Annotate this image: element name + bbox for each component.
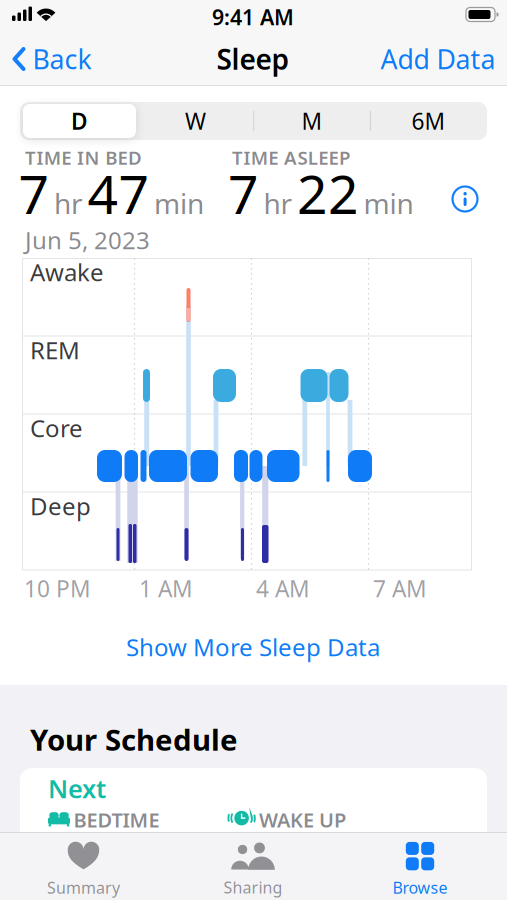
staticText: Sleep bbox=[216, 40, 289, 78]
staticText: 7 bbox=[228, 158, 259, 229]
staticText: Jun 5, 2023 bbox=[25, 224, 150, 256]
staticText: TIME IN BED bbox=[25, 145, 142, 170]
staticText: Core bbox=[30, 412, 83, 444]
staticText: Next bbox=[48, 771, 106, 805]
staticText: 6M bbox=[411, 106, 445, 136]
staticText: BEDTIME bbox=[73, 806, 159, 833]
staticText: min bbox=[363, 185, 413, 222]
button[interactable]: Add Data bbox=[380, 41, 495, 77]
staticText: Add Data bbox=[380, 41, 495, 77]
staticText: Awake bbox=[30, 256, 104, 288]
button[interactable]: Summary bbox=[47, 842, 120, 898]
staticText: 4 AM bbox=[256, 573, 310, 604]
button[interactable]: D bbox=[23, 104, 136, 138]
staticText: Your Schedule bbox=[30, 720, 238, 759]
staticText: hr bbox=[54, 185, 83, 222]
staticText: Summary bbox=[47, 877, 120, 898]
button[interactable]: About Sleep bbox=[451, 185, 479, 213]
staticText: 7 bbox=[18, 158, 49, 229]
button[interactable]: Back bbox=[12, 41, 91, 77]
button[interactable]: Browse bbox=[392, 842, 447, 898]
staticText: TIME ASLEEP bbox=[232, 145, 350, 170]
staticText: 47 bbox=[87, 158, 149, 229]
staticText: 7 AM bbox=[373, 573, 427, 604]
staticText: Deep bbox=[30, 490, 91, 522]
button[interactable]: 6M bbox=[372, 104, 485, 138]
staticText: 9:41 AM bbox=[212, 3, 294, 31]
staticText: WAKE UP bbox=[259, 806, 346, 833]
staticText: Back bbox=[32, 41, 91, 77]
staticText: M bbox=[301, 106, 322, 136]
button[interactable]: W bbox=[139, 104, 252, 138]
staticText: Sharing bbox=[223, 877, 282, 898]
staticText: hr bbox=[263, 185, 292, 222]
staticText: Show More Sleep Data bbox=[126, 631, 380, 663]
staticText: D bbox=[71, 106, 88, 136]
staticText: Browse bbox=[392, 877, 447, 898]
button[interactable]: M bbox=[255, 104, 368, 138]
staticText: W bbox=[185, 106, 206, 136]
staticText: 1 AM bbox=[139, 573, 193, 604]
staticText: REM bbox=[30, 334, 80, 366]
button[interactable]: Sharing bbox=[223, 842, 282, 898]
button[interactable]: Show More Sleep Data bbox=[126, 631, 380, 663]
button[interactable]: Next bbox=[20, 768, 487, 900]
staticText: min bbox=[154, 185, 204, 222]
staticText: 22 bbox=[297, 158, 359, 229]
staticText: 10 PM bbox=[24, 573, 91, 604]
